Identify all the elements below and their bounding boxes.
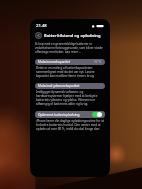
button[interactable]: Maksimumskapacitet bbox=[35, 59, 105, 65]
staticText: Et kop med en gennemfaldige batterier er… bbox=[35, 42, 105, 54]
staticText: Optimeret batteriopladning bbox=[38, 113, 80, 117]
staticText: 21.48 bbox=[36, 23, 47, 28]
staticText: Dette er en måling af batterikapaciteten… bbox=[36, 66, 104, 78]
button[interactable]: Slå optimeret batteriopladning fra bbox=[92, 112, 102, 117]
button[interactable]: Maksimal ydeevnekapacitet bbox=[35, 83, 105, 89]
staticText: iPhone lærer din daglige opladningsrutin… bbox=[36, 119, 104, 131]
staticText: Maksimal ydeevnekapacitet bbox=[38, 84, 80, 88]
staticText: Indbygget dynamisk software- og hardware… bbox=[36, 90, 104, 106]
button[interactable]: Tilbage bbox=[35, 32, 42, 39]
staticText: 92 % bbox=[94, 60, 102, 64]
staticText: Batteritilstand og opladning bbox=[44, 33, 101, 38]
button[interactable]: Optimeret batteriopladning bbox=[35, 111, 105, 118]
staticText: Maksimumskapacitet bbox=[38, 60, 70, 64]
